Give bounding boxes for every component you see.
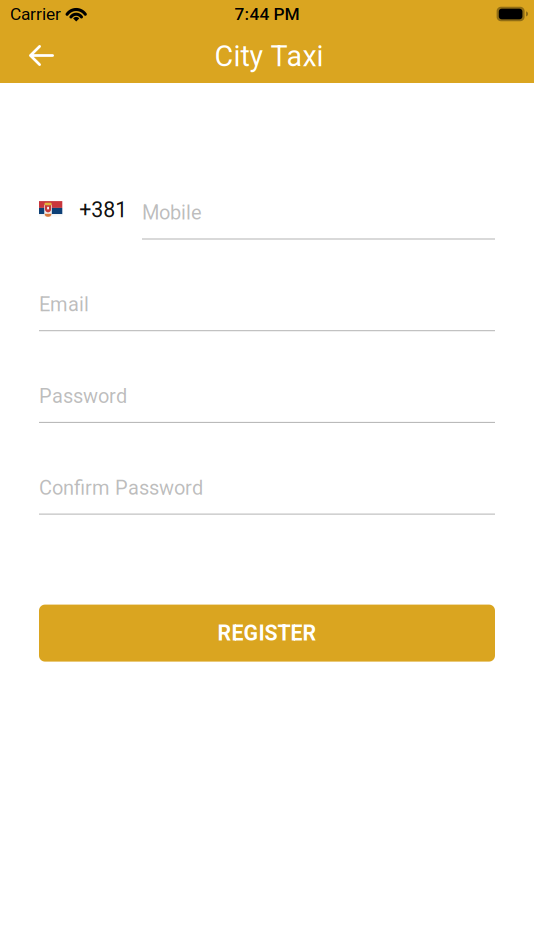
- staticText: Carrier: [10, 4, 61, 24]
- staticText: Email: [39, 293, 89, 316]
- staticText: 7:44 PM: [234, 4, 299, 24]
- staticText: Password: [39, 384, 127, 408]
- staticText: REGISTER: [217, 621, 316, 646]
- button[interactable]: REGISTER: [39, 605, 495, 662]
- staticText: Mobile: [142, 201, 202, 224]
- staticText: Confirm Password: [39, 476, 203, 500]
- button[interactable]: Back: [14, 28, 69, 83]
- staticText: City Taxi: [214, 40, 323, 73]
- staticText: +381: [79, 197, 127, 222]
